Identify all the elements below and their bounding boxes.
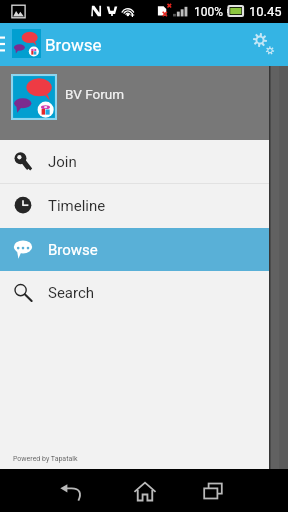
staticText: Search [48,284,95,302]
button[interactable]: Join [0,140,269,184]
staticText: Browse [48,241,98,259]
staticText: 100% [194,5,224,19]
button[interactable]: BV Forum [0,66,269,140]
button[interactable]: Search [0,271,269,315]
staticText: Powered by Tapatalk [13,455,78,463]
staticText: Browse [45,35,102,55]
button[interactable]: Timeline [0,184,269,228]
button[interactable]: Back [46,469,94,512]
staticText: BV Forum [65,86,125,102]
button[interactable]: Home [121,469,169,512]
button[interactable]: Browse [0,228,269,271]
staticText: Timeline [48,197,106,215]
button[interactable]: Open navigation drawer [0,33,5,55]
button[interactable]: Settings [248,32,280,64]
staticText: 10.45 [249,4,282,19]
button[interactable]: Recent apps [189,469,237,512]
staticText: Join [48,153,77,171]
